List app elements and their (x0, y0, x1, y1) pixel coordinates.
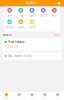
staticText: Cards (17, 97, 22, 99)
button[interactable]: Earn rewards today (2, 52, 62, 60)
staticText: My Wallet (26, 1, 38, 5)
button[interactable]: Home (0, 93, 13, 99)
staticText: Pay (19, 14, 23, 17)
button[interactable]: Profile (58, 2, 60, 4)
staticText: Cards (28, 14, 35, 17)
button[interactable]: Friends (38, 93, 51, 99)
button[interactable]: Funds (4, 19, 15, 29)
button[interactable]: Pay (15, 8, 26, 17)
staticText: Home (4, 97, 8, 99)
staticText: Bills (40, 14, 46, 17)
staticText: Friends (42, 97, 48, 99)
button[interactable]: More (54, 33, 61, 36)
staticText: Scan (7, 14, 12, 17)
button[interactable]: Scan (26, 93, 38, 99)
staticText: Scan (30, 97, 34, 99)
button[interactable]: Me (51, 93, 64, 99)
button[interactable]: Scan (4, 8, 15, 17)
staticText: Me (57, 97, 59, 99)
staticText: Earn rewards today (8, 54, 31, 58)
staticText: Loans (17, 25, 24, 29)
button[interactable]: Cards (13, 93, 26, 99)
staticText: More (54, 33, 61, 36)
staticText: 1,284.50 (5, 45, 19, 48)
button[interactable]: Total balance (2, 38, 62, 51)
staticText: Funds (6, 25, 14, 29)
button[interactable]: More (49, 8, 60, 17)
button[interactable]: Cards (26, 8, 38, 17)
button[interactable]: Bills (38, 8, 49, 17)
staticText: More (51, 14, 58, 17)
button[interactable]: Gold (26, 19, 38, 29)
staticText: Assets (3, 33, 11, 36)
staticText: Gold (28, 25, 35, 29)
button[interactable]: Loans (15, 19, 26, 29)
staticText: Total balance (8, 40, 25, 44)
